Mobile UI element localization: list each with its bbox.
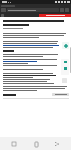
button[interactable]: Action	[52, 93, 69, 96]
button[interactable]: Action	[3, 93, 69, 96]
button[interactable]: Address bar	[7, 8, 59, 12]
button[interactable]: Related item	[61, 59, 69, 75]
button[interactable]: Home	[30, 138, 42, 150]
button[interactable]: Site banner	[39, 14, 71, 17]
button[interactable]: Recents	[8, 138, 20, 150]
button[interactable]: App icon	[62, 42, 69, 49]
button[interactable]: Share	[51, 138, 63, 150]
button[interactable]: Menu	[1, 14, 4, 17]
